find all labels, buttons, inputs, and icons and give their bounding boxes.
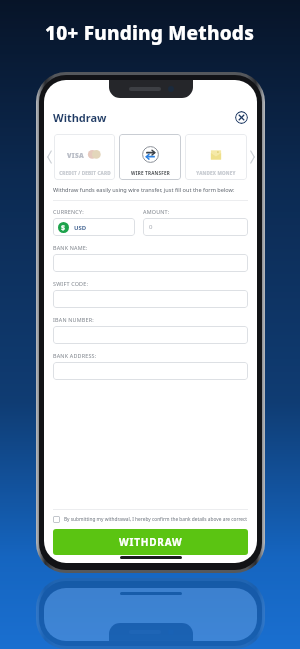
button[interactable]: By submitting my withdrawal, I hereby co…: [53, 516, 248, 523]
staticText: VISA: [67, 151, 85, 160]
staticText: AMOUNT:: [143, 208, 170, 215]
staticText: $: [61, 223, 66, 233]
staticText: 10+ Funding Methods: [45, 20, 255, 46]
button[interactable]: WIRE TRANSFER: [119, 134, 181, 180]
staticText: BANK NAME:: [53, 244, 88, 251]
staticText: CREDIT / DEBIT CARD: [59, 170, 111, 176]
button[interactable]: [53, 254, 248, 272]
staticText: 0: [149, 223, 153, 231]
button[interactable]: [53, 290, 248, 308]
button[interactable]: Previous: [44, 134, 54, 180]
staticText: CURRENCY:: [53, 208, 84, 215]
staticText: IBAN NUMBER:: [53, 316, 94, 323]
button[interactable]: [53, 362, 248, 380]
staticText: SWIFT CODE:: [53, 280, 89, 287]
staticText: USD: [74, 224, 87, 232]
staticText: Withdraw: [53, 110, 107, 125]
button[interactable]: 0: [143, 218, 248, 236]
button[interactable]: WITHDRAW: [53, 529, 248, 555]
staticText: BANK ADDRESS:: [53, 352, 97, 359]
staticText: Withdraw funds easily using wire transfe…: [53, 186, 235, 194]
button[interactable]: $: [53, 218, 135, 236]
button[interactable]: VISA: [54, 134, 115, 180]
button[interactable]: [53, 326, 248, 344]
button[interactable]: Next: [247, 134, 257, 180]
staticText: WIRE TRANSFER: [131, 170, 170, 176]
staticText: WITHDRAW: [119, 535, 183, 549]
button[interactable]: Close: [235, 111, 248, 124]
button[interactable]: YANDEX MONEY: [185, 134, 247, 180]
staticText: YANDEX MONEY: [196, 170, 236, 176]
staticText: By submitting my withdrawal, I hereby co…: [64, 516, 248, 523]
